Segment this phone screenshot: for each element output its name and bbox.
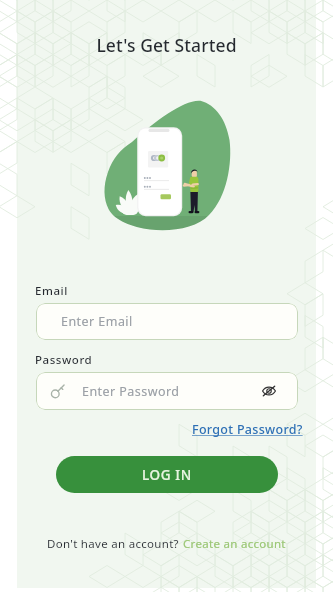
- staticText: Let's Get Started: [96, 33, 237, 57]
- staticText: Password: [35, 352, 93, 368]
- staticText: LOG IN: [142, 466, 192, 484]
- staticText: Enter Password: [82, 383, 180, 400]
- staticText: Don't have an account?: [47, 536, 183, 552]
- button[interactable]: Enter Email: [36, 303, 298, 340]
- button[interactable]: Forgot Password?: [192, 421, 303, 438]
- staticText: Email: [35, 283, 68, 299]
- button[interactable]: Create an account: [183, 536, 286, 552]
- button[interactable]: Show password: [262, 385, 276, 397]
- button[interactable]: LOG IN: [56, 456, 278, 493]
- button[interactable]: Enter Password: [36, 372, 298, 410]
- staticText: Create an account: [183, 536, 286, 552]
- staticText: Forgot Password?: [192, 421, 303, 438]
- staticText: Enter Email: [61, 313, 133, 330]
